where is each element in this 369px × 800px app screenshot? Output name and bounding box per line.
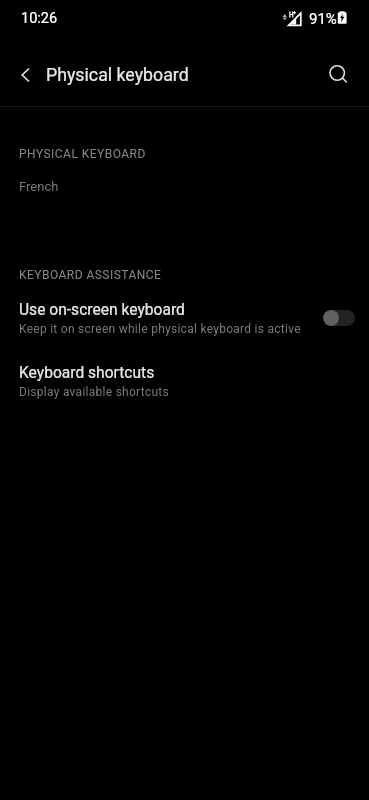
staticText: PHYSICAL KEYBOARD (19, 147, 146, 161)
staticText: Physical keyboard (46, 65, 189, 86)
button[interactable]: Back (2, 51, 50, 99)
staticText: Keep it on screen while physical keyboar… (19, 322, 301, 336)
staticText: 10:26 (21, 10, 58, 27)
staticText: 91% (309, 10, 337, 28)
button[interactable]: Search (315, 51, 363, 99)
staticText: Use on-screen keyboard (19, 301, 185, 319)
button[interactable]: Use on-screen keyboard (323, 310, 355, 326)
button[interactable]: Use on-screen keyboard (0, 291, 369, 345)
staticText: Display available shortcuts (19, 385, 170, 399)
staticText: H (289, 11, 294, 19)
button[interactable]: Keyboard shortcuts (0, 354, 369, 408)
button[interactable]: French (0, 171, 369, 201)
staticText: Keyboard shortcuts (19, 364, 155, 382)
staticText: French (19, 179, 59, 194)
staticText: KEYBOARD ASSISTANCE (19, 268, 162, 282)
